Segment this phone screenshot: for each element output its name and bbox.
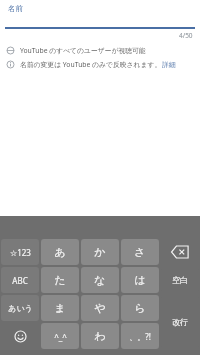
staticText: 空白: [172, 275, 188, 285]
button[interactable]: 、。?!: [121, 323, 159, 349]
staticText: 名前: [8, 4, 23, 13]
staticText: ま: [54, 301, 66, 315]
button[interactable]: は: [121, 267, 159, 293]
staticText: ^_^: [54, 331, 67, 342]
staticText: あいう: [8, 303, 33, 313]
staticText: 改行: [172, 317, 188, 327]
button[interactable]: 改行: [161, 295, 199, 349]
button[interactable]: あいう: [1, 295, 39, 321]
button[interactable]: 詳細: [162, 60, 176, 69]
staticText: わ: [94, 329, 106, 343]
staticText: 、。?!: [129, 331, 151, 342]
staticText: あ: [54, 245, 66, 259]
staticText: か: [94, 245, 106, 259]
staticText: な: [94, 273, 106, 287]
button[interactable]: さ: [121, 239, 159, 265]
button[interactable]: な: [81, 267, 119, 293]
staticText: た: [54, 273, 66, 287]
button[interactable]: た: [41, 267, 79, 293]
staticText: 4/50: [179, 31, 193, 40]
button[interactable]: や: [81, 295, 119, 321]
staticText: ら: [134, 301, 146, 315]
staticText: さ: [134, 245, 146, 259]
staticText: ABC: [12, 275, 28, 286]
button[interactable]: ま: [41, 295, 79, 321]
staticText: は: [134, 273, 146, 287]
staticText: や: [94, 301, 106, 315]
staticText: YouTube のすべてのユーザーが視聴可能: [20, 46, 146, 55]
button[interactable]: ら: [121, 295, 159, 321]
button[interactable]: Backspace: [161, 239, 199, 265]
button[interactable]: か: [81, 239, 119, 265]
button[interactable]: Emoji: [1, 323, 39, 349]
button[interactable]: ABC: [1, 267, 39, 293]
button[interactable]: あ: [41, 239, 79, 265]
button[interactable]: わ: [81, 323, 119, 349]
staticText: ☆123: [10, 247, 31, 258]
button[interactable]: ^_^: [41, 323, 79, 349]
staticText: 名前の変更は YouTube のみで反映されます。: [20, 60, 162, 69]
button[interactable]: ☆123: [1, 239, 39, 265]
staticText: 詳細: [162, 60, 176, 69]
button[interactable]: 空白: [161, 267, 199, 293]
